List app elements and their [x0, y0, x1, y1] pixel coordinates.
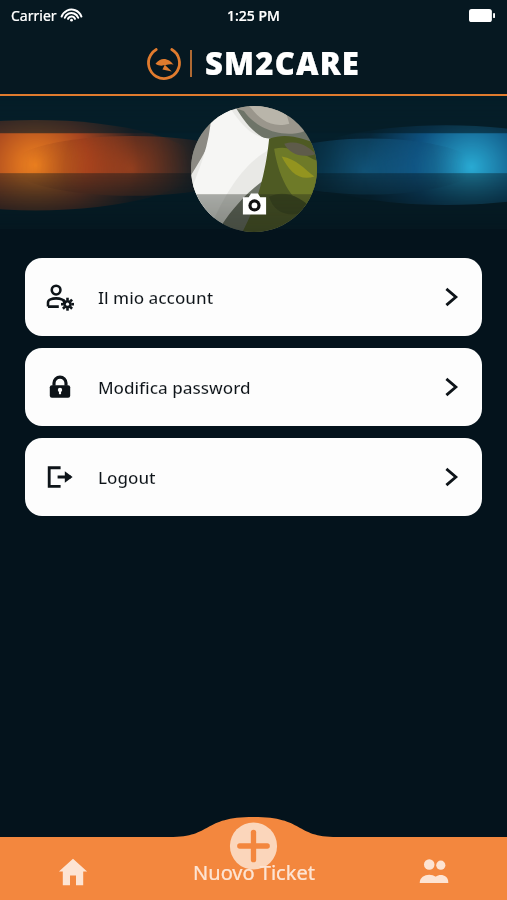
staticText: SM2CARE	[205, 42, 361, 84]
button[interactable]: Nuovo Ticket	[174, 828, 334, 900]
staticText: Carrier	[11, 6, 57, 25]
button[interactable]: Logout	[25, 438, 482, 516]
staticText: Il mio account	[98, 286, 214, 309]
button[interactable]: Home	[45, 844, 101, 900]
staticText: 1:25 PM	[227, 6, 280, 25]
button[interactable]: Change profile photo	[191, 106, 317, 232]
button[interactable]: Il mio account	[25, 258, 482, 336]
button[interactable]: Modifica password	[25, 348, 482, 426]
button[interactable]: Contacts	[406, 844, 462, 900]
staticText: Nuovo Ticket	[193, 859, 315, 886]
staticText: Logout	[98, 466, 156, 489]
staticText: Modifica password	[98, 376, 251, 399]
